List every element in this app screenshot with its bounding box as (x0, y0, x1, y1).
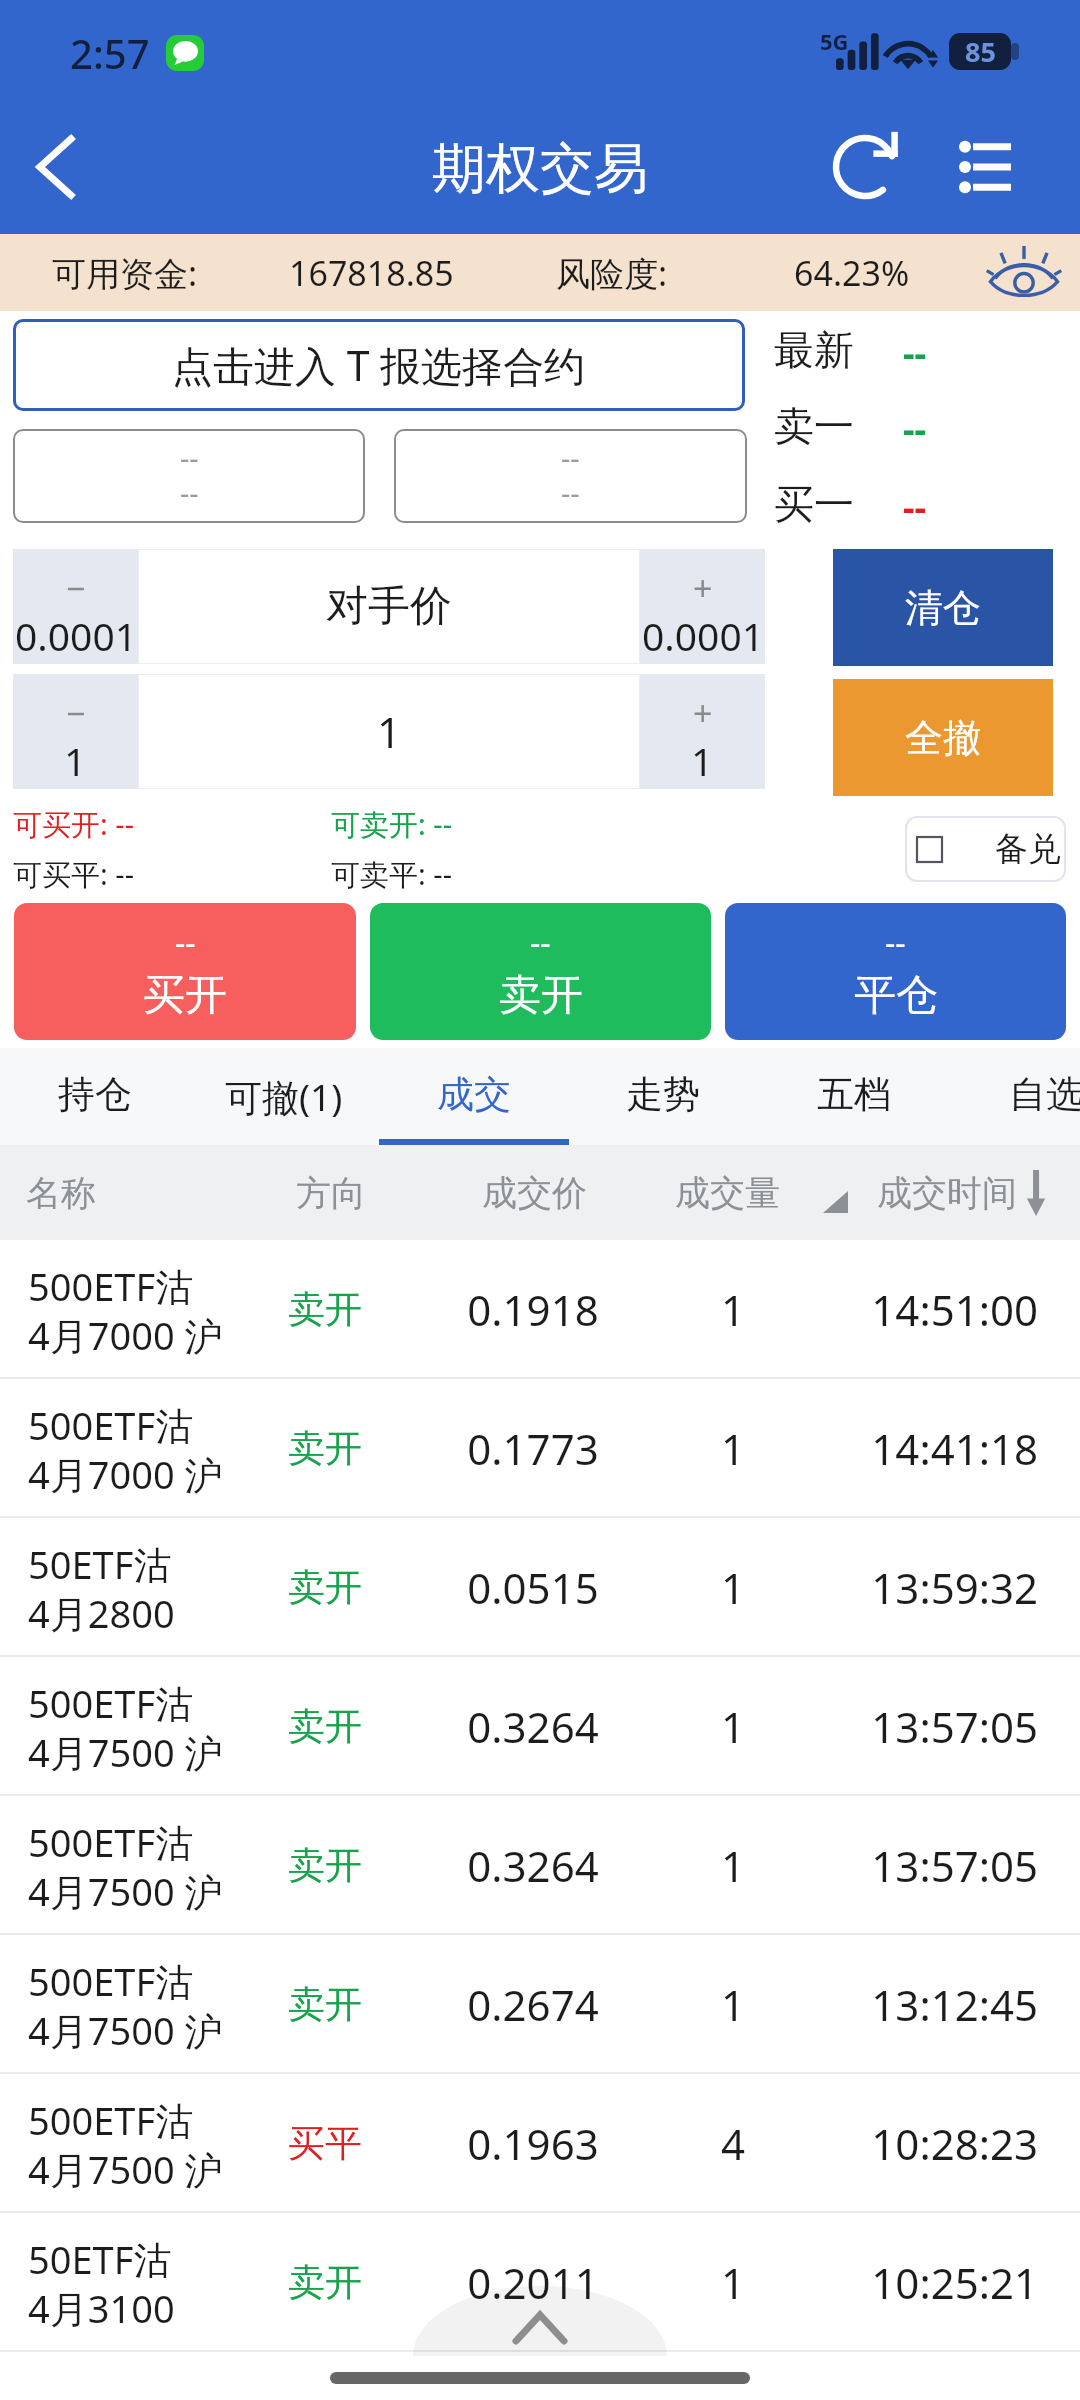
staticText: 500ETF沽 (28, 1816, 194, 1868)
staticText: 平仓 (854, 969, 938, 1022)
staticText: 1 (655, 1976, 811, 2033)
staticText: 4月7500 沪 (28, 2143, 223, 2195)
staticText: 0.0001 (642, 609, 764, 662)
button[interactable]: 成交 (379, 1048, 569, 1145)
button[interactable]: 50ETF沽 (0, 2213, 1080, 2352)
staticText: 50ETF沽 (28, 1538, 172, 1590)
staticText: 成交 (437, 1071, 511, 1118)
staticText: 对手价 (326, 580, 452, 633)
staticText: 4月7500 沪 (28, 1726, 223, 1778)
staticText: 1 (655, 1281, 811, 1338)
button[interactable]: 500ETF沽 (0, 2074, 1080, 2213)
staticText: 0.1918 (440, 1281, 626, 1338)
staticText: -- (903, 328, 927, 377)
button[interactable]: 500ETF沽 (0, 1379, 1080, 1518)
staticText: 期权交易 (432, 135, 648, 203)
staticText: -- (885, 921, 906, 965)
button[interactable]: 500ETF沽 (0, 1657, 1080, 1796)
staticText: 10:28:23 (818, 2115, 1038, 2172)
button[interactable]: -- (370, 903, 711, 1040)
staticText: 自选 (1009, 1071, 1080, 1118)
staticText: 卖开 (288, 1425, 362, 1472)
button[interactable]: -- (14, 903, 356, 1040)
staticText: -- (175, 921, 196, 965)
button[interactable]: -- (394, 429, 747, 523)
staticText: 0.0515 (440, 1559, 626, 1616)
staticText: 4月7500 沪 (28, 1865, 223, 1917)
staticText: 持仓 (58, 1071, 132, 1118)
staticText: 1 (691, 734, 714, 787)
staticText: 4月3100 (28, 2282, 175, 2334)
staticText: 500ETF沽 (28, 1399, 194, 1451)
button[interactable]: + (640, 674, 765, 789)
button[interactable]: -- (13, 429, 365, 523)
button[interactable]: − (13, 674, 138, 789)
button[interactable]: Back (10, 122, 100, 212)
button[interactable]: Refresh (818, 100, 918, 234)
button[interactable]: 500ETF沽 (0, 1240, 1080, 1379)
staticText: 13:57:05 (818, 1837, 1038, 1894)
staticText: 方向 (296, 1171, 366, 1215)
staticText: 卖开 (288, 1564, 362, 1611)
staticText: -- (903, 482, 927, 531)
button[interactable]: -- (725, 903, 1066, 1040)
button[interactable]: 五档 (759, 1048, 949, 1145)
staticText: 买开 (143, 969, 227, 1022)
button[interactable]: − (13, 549, 138, 664)
staticText: 1 (655, 1698, 811, 1755)
staticText: -- (903, 404, 927, 453)
button[interactable]: 可撤(1) (189, 1048, 379, 1145)
staticText: 走势 (626, 1071, 700, 1118)
staticText: 成交量 (675, 1171, 780, 1215)
staticText: 可买开: -- (13, 804, 331, 844)
button[interactable]: 全撤 (833, 679, 1053, 796)
button[interactable]: + (640, 549, 765, 664)
staticText: 1 (655, 1420, 811, 1477)
staticText: 0.3264 (440, 1698, 626, 1755)
staticText: 0.1963 (440, 2115, 626, 2172)
staticText: 4月7500 沪 (28, 2004, 223, 2056)
staticText: 可买平: -- (13, 854, 331, 894)
staticText: 最新 (774, 325, 854, 375)
button[interactable]: 持仓 (0, 1048, 190, 1145)
button[interactable]: 走势 (568, 1048, 758, 1145)
button[interactable]: 清仓 (833, 549, 1053, 666)
staticText: 买一 (774, 479, 854, 529)
staticText: 4月7000 沪 (28, 1309, 223, 1361)
button[interactable]: Toggle amount visibility (984, 234, 1064, 311)
staticText: -- (180, 473, 199, 512)
staticText: 1 (64, 734, 87, 787)
staticText: 500ETF沽 (28, 2094, 194, 2146)
staticText: -- (530, 921, 551, 965)
staticText: 10:25:21 (818, 2254, 1038, 2311)
staticText: 卖开 (499, 969, 583, 1022)
button[interactable]: 备兑 (905, 816, 1066, 882)
staticText: 500ETF沽 (28, 1955, 194, 2007)
staticText: 全撤 (905, 714, 981, 762)
staticText: 备兑 (995, 828, 1061, 870)
staticText: 1 (655, 1559, 811, 1616)
staticText: 清仓 (905, 584, 981, 632)
button[interactable]: 500ETF沽 (0, 1796, 1080, 1935)
staticText: 卖开 (288, 1703, 362, 1750)
button[interactable]: 500ETF沽 (0, 1935, 1080, 2074)
button[interactable]: Menu (930, 100, 1040, 234)
staticText: + (693, 690, 713, 736)
staticText: 1 (377, 703, 402, 760)
staticText: 1 (655, 2254, 811, 2311)
staticText: 卖开 (288, 1981, 362, 2028)
staticText: 4月7000 沪 (28, 1448, 223, 1500)
staticText: − (66, 565, 86, 611)
staticText: -- (561, 473, 580, 512)
staticText: 5G (820, 26, 849, 56)
button[interactable]: 点击进入 T 报选择合约 (13, 319, 745, 411)
staticText: 点击进入 T 报选择合约 (172, 337, 586, 393)
staticText: -- (180, 438, 199, 477)
staticText: 0.0001 (15, 609, 137, 662)
staticText: 500ETF沽 (28, 1260, 194, 1312)
button[interactable]: 50ETF沽 (0, 1518, 1080, 1657)
staticText: 167818.85 (289, 250, 454, 296)
button[interactable]: 自选 (951, 1048, 1080, 1145)
staticText: 卖开 (288, 1286, 362, 1333)
staticText: 成交价 (482, 1171, 587, 1215)
